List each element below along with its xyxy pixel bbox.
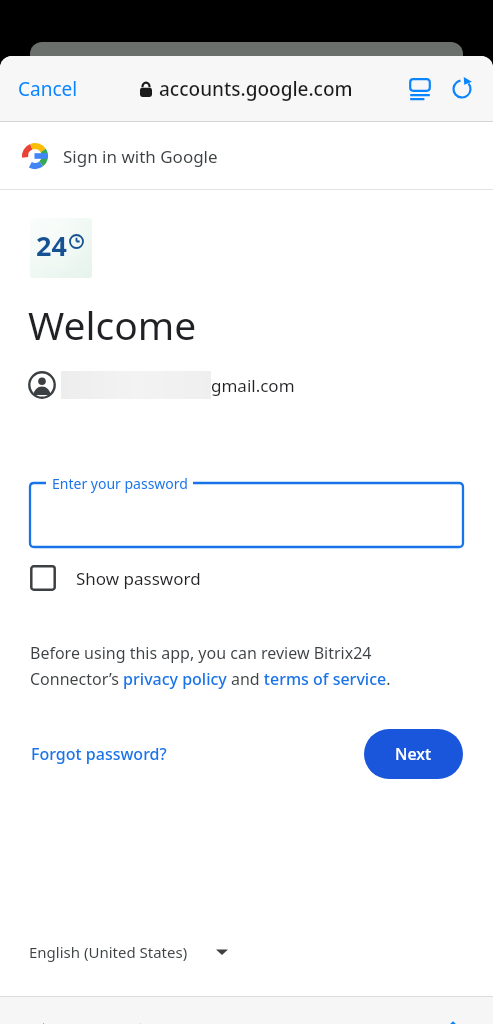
button[interactable]: Forgot password? — [30, 735, 168, 773]
staticText: Sign in with Google — [63, 145, 218, 168]
staticText: Show password — [76, 567, 201, 590]
staticText: English (United States) — [29, 942, 188, 962]
button[interactable]: English (United States) — [29, 934, 228, 970]
button[interactable]: Reload — [441, 68, 483, 110]
staticText: Welcome — [28, 298, 197, 351]
staticText: Before using this app, you can review Bi… — [30, 642, 463, 690]
button[interactable]: Show password — [30, 561, 211, 595]
button[interactable]: Cancel — [14, 70, 82, 108]
button[interactable]: Reader view — [399, 68, 441, 110]
button[interactable]: Back — [12, 1007, 68, 1024]
button[interactable]: gmail.com — [28, 371, 303, 399]
staticText: Next — [395, 743, 432, 765]
staticText: Enter your password — [52, 474, 188, 493]
staticText: gmail.com — [211, 374, 295, 397]
staticText: accounts.google.com — [159, 76, 353, 102]
button[interactable]: Next — [364, 729, 463, 779]
staticText: 24 — [36, 227, 67, 264]
button[interactable]: Share — [425, 1007, 481, 1024]
